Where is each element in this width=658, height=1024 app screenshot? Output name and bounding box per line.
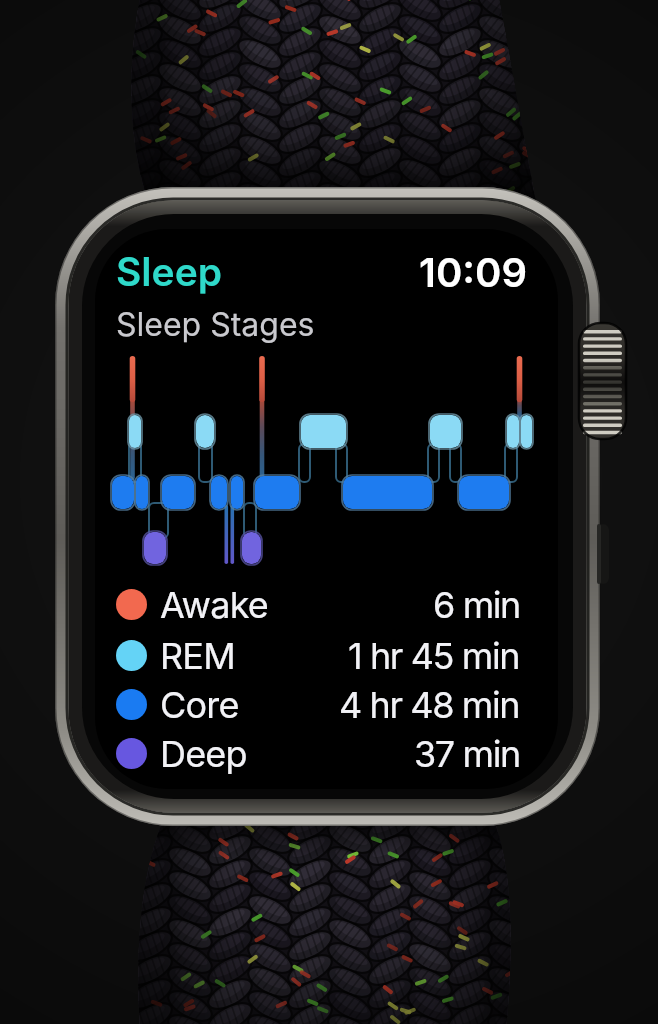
staticText: 6 min [433,583,520,627]
button[interactable]: Core [116,681,520,728]
staticText: 1 hr 45 min [348,634,520,678]
staticText: Sleep Stages [116,305,315,344]
button[interactable]: Awake [116,581,520,628]
staticText: Sleep [116,248,223,295]
staticText: 10:09 [419,248,528,296]
staticText: REM [160,634,235,678]
staticText: Deep [160,732,247,776]
staticText: Awake [160,583,269,627]
staticText: 37 min [414,732,520,776]
staticText: 4 hr 48 min [339,683,520,727]
button[interactable]: REM [116,632,520,679]
button[interactable]: Deep [116,730,520,777]
staticText: Core [160,683,239,727]
